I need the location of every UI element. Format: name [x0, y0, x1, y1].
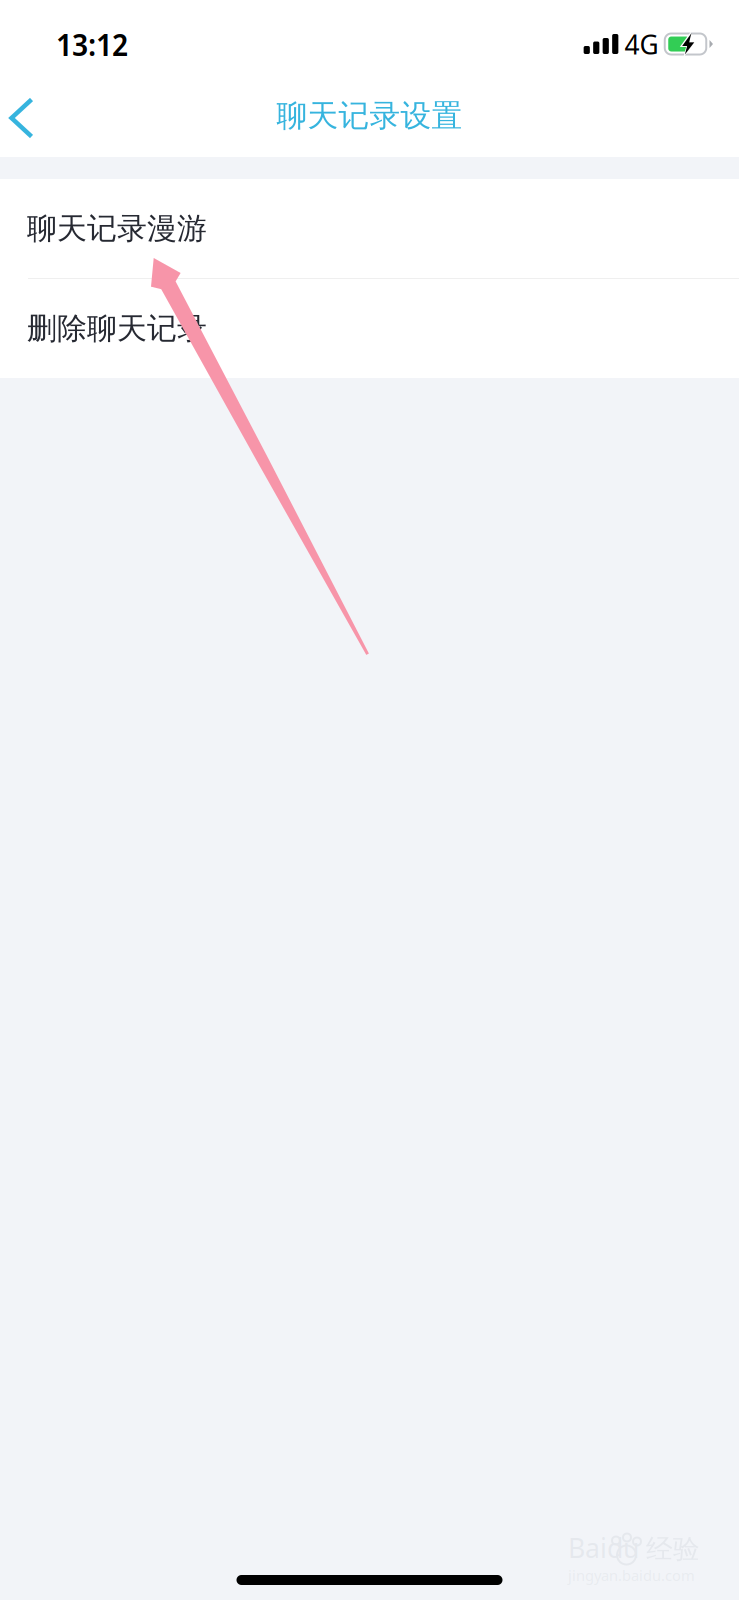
button[interactable]: Back	[0, 88, 64, 150]
staticText: 4G	[624, 25, 658, 63]
button[interactable]: 聊天记录漫游	[0, 179, 739, 278]
staticText: 聊天记录漫游	[27, 210, 207, 247]
staticText: Baidu 经验	[568, 1530, 700, 1566]
staticText: 删除聊天记录	[27, 310, 207, 347]
staticText: 13:12	[56, 23, 128, 65]
button[interactable]: 删除聊天记录	[0, 279, 739, 378]
staticText: 聊天记录设置	[276, 97, 462, 135]
